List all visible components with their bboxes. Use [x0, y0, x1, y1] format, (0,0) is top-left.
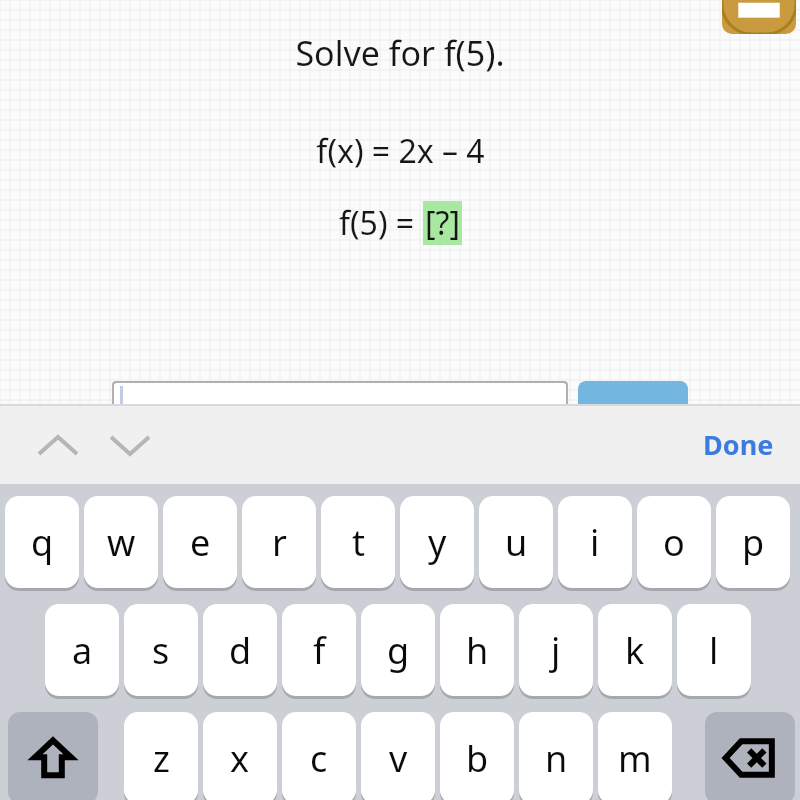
staticText: f(x) = 2x – 4	[316, 129, 485, 173]
staticText: Done	[703, 426, 774, 463]
staticText: d	[229, 626, 252, 675]
staticText: a	[72, 626, 93, 675]
button[interactable]: u	[479, 496, 553, 588]
staticText: k	[625, 626, 645, 675]
button[interactable]: x	[203, 712, 277, 800]
staticText: w	[107, 518, 136, 567]
staticText: t	[352, 518, 365, 567]
staticText: q	[31, 518, 54, 567]
button[interactable]: i	[558, 496, 632, 588]
button[interactable]: h	[440, 604, 514, 696]
button[interactable]: s	[124, 604, 198, 696]
staticText: i	[590, 518, 600, 567]
staticText: o	[663, 518, 685, 567]
button[interactable]: z	[124, 712, 198, 800]
staticText: h	[466, 626, 489, 675]
button[interactable]: Menu	[722, 0, 796, 34]
button[interactable]: Shift	[8, 712, 98, 800]
button[interactable]: e	[163, 496, 237, 588]
staticText: l	[709, 626, 719, 675]
staticText: x	[230, 734, 250, 783]
staticText: b	[466, 734, 489, 783]
staticText: g	[387, 626, 410, 675]
button[interactable]: g	[361, 604, 435, 696]
staticText: y	[428, 518, 447, 567]
staticText: m	[618, 734, 652, 783]
staticText: v	[389, 734, 408, 783]
staticText: z	[153, 734, 170, 783]
button[interactable]: q	[5, 496, 79, 588]
button[interactable]: c	[282, 712, 356, 800]
button[interactable]: k	[598, 604, 672, 696]
staticText: f(5) =	[339, 201, 423, 245]
button[interactable]: y	[400, 496, 474, 588]
button[interactable]: Done	[695, 418, 782, 471]
button[interactable]: b	[440, 712, 514, 800]
button[interactable]: v	[361, 712, 435, 800]
button[interactable]: j	[519, 604, 593, 696]
button[interactable]: l	[677, 604, 751, 696]
button[interactable]: w	[84, 496, 158, 588]
staticText: c	[310, 734, 328, 783]
button[interactable]: a	[45, 604, 119, 696]
staticText: f	[313, 626, 326, 675]
button[interactable]: Previous field	[28, 419, 88, 471]
staticText: e	[190, 518, 211, 567]
button[interactable]: Backspace	[705, 712, 795, 800]
button[interactable]: d	[203, 604, 277, 696]
staticText: s	[152, 626, 170, 675]
staticText: n	[545, 734, 568, 783]
button[interactable]: n	[519, 712, 593, 800]
staticText: u	[505, 518, 528, 567]
button[interactable]: Enter	[578, 381, 688, 421]
button[interactable]: t	[321, 496, 395, 588]
staticText: j	[551, 626, 561, 675]
button[interactable]: r	[242, 496, 316, 588]
button[interactable]: o	[637, 496, 711, 588]
button[interactable]: f	[282, 604, 356, 696]
staticText: p	[742, 518, 765, 567]
staticText: r	[272, 518, 287, 567]
button[interactable]: m	[598, 712, 672, 800]
button[interactable]: p	[716, 496, 790, 588]
button[interactable]: Next field	[100, 419, 160, 471]
button[interactable]	[114, 383, 566, 419]
staticText: [?]	[425, 201, 460, 245]
staticText: Solve for f(5).	[295, 30, 505, 76]
